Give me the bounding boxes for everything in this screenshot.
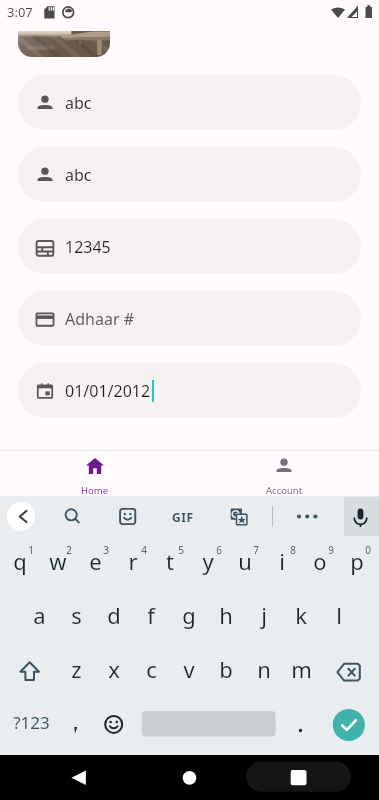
button[interactable]: 3 [86, 534, 126, 566]
button[interactable]: abc [18, 75, 361, 130]
button[interactable]: r [113, 545, 153, 577]
button[interactable]: abc [18, 147, 361, 202]
staticText: n [257, 654, 271, 684]
staticText: g [182, 600, 196, 630]
button[interactable]: b [206, 653, 246, 685]
staticText: 12345 [65, 236, 111, 258]
button[interactable]: 9 [311, 534, 351, 566]
button[interactable]: a [19, 599, 59, 631]
staticText: a [33, 600, 46, 630]
button[interactable]: 0 [348, 534, 379, 566]
button[interactable]: y [188, 545, 228, 577]
button[interactable]: 7 [236, 534, 276, 566]
button[interactable]: p [337, 545, 377, 577]
button[interactable]: t [150, 545, 190, 577]
staticText: z [71, 654, 82, 684]
button[interactable]: GIF [162, 500, 204, 534]
staticText: 4 [141, 543, 147, 557]
button[interactable]: 1 [11, 534, 51, 566]
button[interactable]: h [206, 599, 246, 631]
staticText: j [261, 600, 267, 630]
button[interactable]: v [169, 653, 209, 685]
button[interactable]: 01/01/2012 [18, 363, 361, 418]
staticText: m [291, 654, 312, 684]
button[interactable]: 4 [124, 534, 164, 566]
staticText: i [279, 546, 285, 576]
staticText: 3:07 [7, 3, 33, 21]
button[interactable]: m [281, 653, 321, 685]
button[interactable]: l [319, 599, 359, 631]
staticText: u [238, 546, 252, 576]
button[interactable]: z [56, 653, 96, 685]
staticText: e [89, 546, 102, 576]
button[interactable]: c [131, 653, 171, 685]
staticText: x [108, 654, 120, 684]
staticText: 6 [216, 543, 222, 557]
button[interactable]: Account [189, 451, 379, 496]
button[interactable]: 2 [49, 534, 89, 566]
button[interactable]: 12345 [18, 219, 361, 274]
button[interactable]: u [225, 545, 265, 577]
button[interactable]: f [131, 599, 171, 631]
staticText: 3 [103, 543, 109, 557]
staticText: w [49, 546, 67, 576]
button[interactable]: d [94, 599, 134, 631]
staticText: 5 [178, 543, 184, 557]
staticText: 8 [290, 543, 296, 557]
staticText: 9 [328, 543, 334, 557]
staticText: f [147, 600, 155, 630]
button[interactable]: ?123 [11, 706, 51, 738]
button[interactable]: e [75, 545, 115, 577]
staticText: 1 [28, 543, 34, 557]
staticText: abc [65, 92, 92, 114]
staticText: ?123 [13, 711, 50, 734]
staticText: k [295, 600, 307, 630]
staticText: Adhaar # [65, 308, 135, 330]
staticText: d [107, 600, 121, 630]
staticText: Account [266, 484, 303, 497]
button[interactable]: Home [0, 451, 189, 496]
staticText: 7 [253, 543, 259, 557]
staticText: v [183, 654, 195, 684]
staticText: l [336, 600, 342, 630]
button[interactable]: s [56, 599, 96, 631]
staticText: r [128, 546, 138, 576]
button[interactable]: w [38, 545, 78, 577]
button[interactable]: Voice input [344, 497, 379, 536]
staticText: Home [81, 484, 109, 497]
staticText: h [219, 600, 233, 630]
staticText: p [350, 546, 364, 576]
staticText: q [13, 546, 27, 576]
button[interactable]: q [0, 545, 40, 577]
staticText: c [146, 654, 157, 684]
staticText: 01/01/2012 [65, 380, 151, 402]
staticText: 0 [365, 543, 371, 557]
staticText: GIF [172, 509, 194, 525]
staticText: s [71, 600, 82, 630]
button[interactable]: Adhaar # [18, 291, 361, 346]
button[interactable]: i [262, 545, 302, 577]
staticText: abc [65, 164, 92, 186]
staticText: t [166, 546, 174, 576]
staticText: b [219, 654, 233, 684]
button[interactable]: 8 [273, 534, 313, 566]
staticText: 2 [66, 543, 72, 557]
button[interactable]: g [169, 599, 209, 631]
button[interactable]: j [244, 599, 284, 631]
button[interactable]: o [300, 545, 340, 577]
button[interactable]: n [244, 653, 284, 685]
button[interactable]: k [281, 599, 321, 631]
staticText: o [313, 546, 327, 576]
button[interactable]: x [94, 653, 134, 685]
staticText: y [202, 546, 214, 576]
button[interactable]: 5 [161, 534, 201, 566]
button[interactable]: 6 [199, 534, 239, 566]
